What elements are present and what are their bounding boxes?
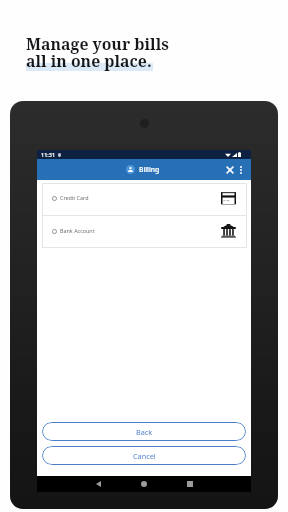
- button[interactable]: Recents: [183, 477, 196, 490]
- staticText: Bank Account: [60, 227, 95, 234]
- staticText: Back: [136, 427, 153, 437]
- button[interactable]: Back: [42, 422, 246, 441]
- button[interactable]: More options: [235, 164, 246, 175]
- button[interactable]: Bank Account: [42, 216, 247, 248]
- staticText: Manage your bills: [26, 33, 169, 55]
- button[interactable]: Back: [92, 477, 105, 490]
- button[interactable]: Credit Card: [42, 183, 247, 215]
- button[interactable]: Close: [223, 163, 236, 176]
- staticText: 11:31: [41, 151, 56, 158]
- staticText: Billing: [139, 165, 160, 174]
- staticText: Cancel: [133, 451, 156, 461]
- staticText: all in one place.: [26, 50, 152, 72]
- button[interactable]: Cancel: [42, 446, 246, 465]
- staticText: Credit Card: [60, 194, 89, 201]
- button[interactable]: Home: [137, 477, 150, 490]
